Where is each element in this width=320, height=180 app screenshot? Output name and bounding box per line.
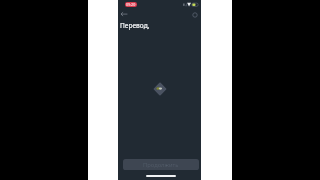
button[interactable]: Back [118,9,128,19]
staticText: Перевод, [120,21,150,30]
button[interactable]: Help [190,10,200,20]
button[interactable]: Продолжить [123,159,199,170]
staticText: Продолжить [143,161,179,169]
staticText: 09:20 [126,2,136,7]
